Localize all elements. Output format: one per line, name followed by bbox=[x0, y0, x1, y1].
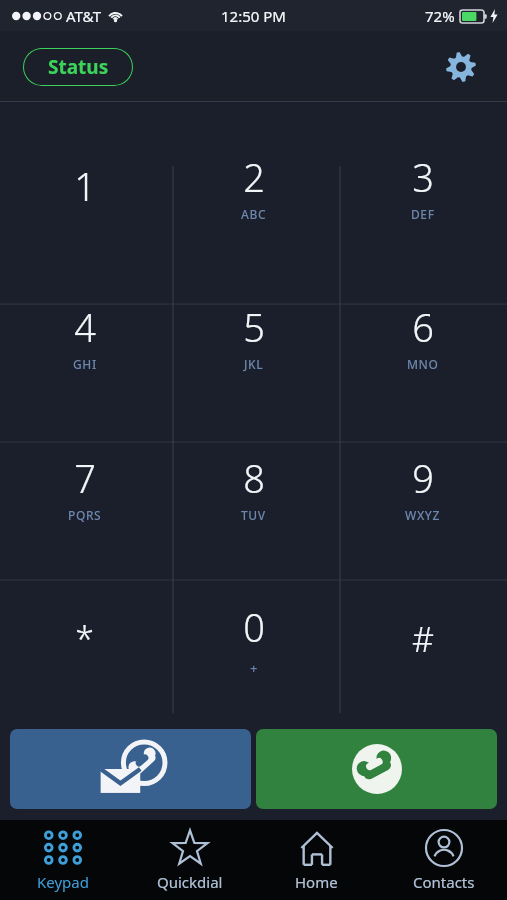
staticText: Status bbox=[48, 54, 109, 80]
staticText: MNO bbox=[407, 356, 439, 372]
button[interactable]: 1 bbox=[0, 115, 169, 265]
staticText: 12:50 PM bbox=[221, 6, 286, 26]
button[interactable]: Status bbox=[22, 48, 134, 86]
staticText: 5 bbox=[243, 301, 265, 353]
staticText: PQRS bbox=[68, 507, 102, 523]
staticText: Quickdial bbox=[157, 872, 223, 892]
button[interactable]: 4 bbox=[0, 265, 169, 416]
button[interactable]: Voicemail bbox=[10, 729, 251, 809]
staticText: 6 bbox=[412, 301, 434, 353]
button[interactable]: 8 bbox=[169, 416, 338, 567]
staticText: 8 bbox=[243, 452, 265, 504]
button[interactable]: Call bbox=[256, 729, 497, 809]
button[interactable]: 2 bbox=[169, 115, 338, 265]
staticText: * bbox=[75, 616, 94, 662]
button[interactable]: Settings bbox=[439, 45, 483, 89]
staticText: 4 bbox=[74, 301, 96, 353]
button[interactable]: 9 bbox=[338, 416, 507, 567]
button[interactable]: Contacts bbox=[380, 820, 507, 900]
button[interactable]: 0 bbox=[169, 567, 338, 718]
button[interactable]: Home bbox=[253, 820, 380, 900]
staticText: # bbox=[412, 616, 434, 662]
button[interactable]: 7 bbox=[0, 416, 169, 567]
button[interactable]: Keypad bbox=[0, 820, 126, 900]
staticText: 72% bbox=[425, 6, 455, 26]
staticText: + bbox=[250, 659, 259, 677]
staticText: 0 bbox=[243, 601, 265, 653]
staticText: ABC bbox=[241, 206, 267, 222]
staticText: WXYZ bbox=[405, 507, 440, 523]
staticText: 9 bbox=[412, 452, 434, 504]
button[interactable]: * bbox=[0, 567, 169, 718]
staticText: JKL bbox=[244, 356, 264, 372]
staticText: 2 bbox=[243, 151, 265, 203]
button[interactable]: 3 bbox=[338, 115, 507, 265]
button[interactable]: # bbox=[338, 567, 507, 718]
staticText: Home bbox=[295, 872, 338, 892]
staticText: 3 bbox=[412, 151, 434, 203]
staticText: AT&T bbox=[66, 6, 101, 26]
staticText: Keypad bbox=[37, 872, 89, 892]
staticText: GHI bbox=[73, 356, 97, 372]
staticText: Contacts bbox=[413, 872, 475, 892]
button[interactable]: Quickdial bbox=[126, 820, 253, 900]
staticText: 7 bbox=[74, 452, 96, 504]
staticText: 1 bbox=[74, 160, 96, 212]
staticText: DEF bbox=[411, 206, 435, 222]
button[interactable]: 6 bbox=[338, 265, 507, 416]
button[interactable]: 5 bbox=[169, 265, 338, 416]
staticText: TUV bbox=[241, 507, 266, 523]
